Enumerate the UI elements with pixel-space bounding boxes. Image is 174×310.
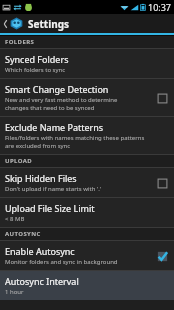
staticText: New and very fast method to determine ch… xyxy=(5,96,118,112)
staticText: 1 hour xyxy=(5,288,24,296)
staticText: Synced Folders xyxy=(5,53,69,65)
staticText: Which folders to sync xyxy=(5,66,66,74)
staticText: Don't upload if name starts with '.' xyxy=(5,185,102,193)
button[interactable]: Navigate up xyxy=(0,14,23,33)
staticText: Files/folders with names matching these … xyxy=(5,134,145,150)
staticText: 10:37 xyxy=(148,1,172,13)
button[interactable]: Exclude Name Patterns xyxy=(0,117,174,154)
staticText: < 8 MB xyxy=(5,215,25,223)
staticText: Settings xyxy=(28,17,69,31)
staticText: Enable Autosync xyxy=(5,245,75,257)
staticText: FOLDERS xyxy=(5,38,35,46)
staticText: Smart Change Detection xyxy=(5,83,109,95)
staticText: UPLOAD xyxy=(5,157,33,165)
staticText: Monitor folders and sync in background xyxy=(5,258,118,266)
button[interactable]: Upload File Size Limit xyxy=(0,198,174,227)
staticText: Skip Hidden Files xyxy=(5,172,77,184)
staticText: AUTOSYNC xyxy=(5,230,41,238)
button[interactable]: Skip Hidden Files xyxy=(0,168,174,197)
staticText: Exclude Name Patterns xyxy=(5,121,104,133)
button[interactable]: Enable Autosync xyxy=(0,241,174,270)
staticText: Autosync Interval xyxy=(5,275,79,287)
button[interactable]: Autosync Interval xyxy=(0,271,174,300)
button[interactable]: Synced Folders xyxy=(0,49,174,78)
button[interactable]: Smart Change Detection xyxy=(0,79,174,116)
staticText: Upload File Size Limit xyxy=(5,202,95,214)
